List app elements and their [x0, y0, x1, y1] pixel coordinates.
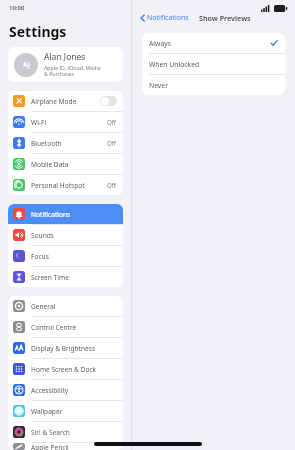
staticText: Mobile Data [31, 160, 117, 169]
staticText: Apple Pencil [31, 443, 117, 450]
staticText: Control Centre [31, 323, 117, 332]
other: Selected [270, 39, 278, 47]
button[interactable]: Control Centre [8, 317, 123, 337]
staticText: Home Screen & Dock [31, 365, 117, 374]
button[interactable]: Home Screen & Dock [8, 359, 123, 379]
staticText: 10:00 [9, 4, 25, 12]
staticText: Sounds [31, 231, 117, 240]
staticText: Show Previews [199, 13, 251, 23]
staticText: Accessibility [31, 386, 117, 395]
staticText: General [31, 302, 117, 311]
button[interactable]: Focus [8, 246, 123, 266]
staticText: Screen Time [31, 273, 117, 282]
button[interactable]: Always [142, 33, 285, 53]
staticText: Wallpaper [31, 407, 117, 416]
button[interactable]: Apple Pencil [8, 443, 123, 450]
button[interactable]: AJ [8, 47, 123, 82]
button[interactable]: Display & Brightness [8, 338, 123, 358]
staticText: Focus [31, 252, 117, 261]
staticText: Bluetooth [31, 139, 107, 148]
button[interactable]: Accessibility [8, 380, 123, 400]
staticText: Never [149, 81, 278, 90]
button[interactable]: Wallpaper [8, 401, 123, 421]
button[interactable]: Mobile Data [8, 154, 123, 174]
staticText: Notifications [31, 210, 117, 219]
button[interactable]: Notifications [138, 11, 191, 25]
button[interactable]: Bluetooth [8, 133, 123, 153]
button[interactable]: Wi-Fi [8, 112, 123, 132]
staticText: Alan Jones [44, 51, 86, 63]
button[interactable]: Siri & Search [8, 422, 123, 442]
staticText: Apple ID, iCloud, Media & Purchases [44, 64, 101, 78]
staticText: Off [107, 181, 117, 189]
staticText: Settings [9, 22, 67, 41]
staticText: Always [149, 39, 270, 48]
button[interactable]: General [8, 296, 123, 316]
staticText: Off [107, 118, 117, 126]
staticText: When Unlocked [149, 60, 278, 69]
button[interactable]: Screen Time [8, 267, 123, 287]
button[interactable]: Airplane Mode [8, 91, 123, 111]
staticText: AJ [23, 60, 30, 70]
staticText: Personal Hotspot [31, 181, 107, 190]
button[interactable]: Never [142, 75, 285, 95]
button[interactable]: Notifications [8, 204, 123, 224]
staticText: Display & Brightness [31, 344, 117, 353]
button[interactable]: When Unlocked [142, 54, 285, 74]
button[interactable]: Personal Hotspot [8, 175, 123, 195]
staticText: Airplane Mode [31, 97, 100, 106]
staticText: Wi-Fi [31, 118, 107, 127]
staticText: Siri & Search [31, 428, 117, 437]
staticText: Off [107, 139, 117, 147]
button[interactable]: Sounds [8, 225, 123, 245]
staticText: Notifications [147, 13, 189, 23]
